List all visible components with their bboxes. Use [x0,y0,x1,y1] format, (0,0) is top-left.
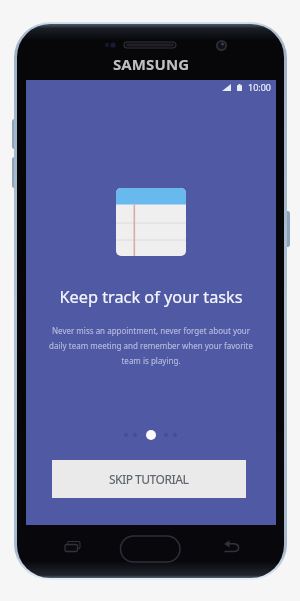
other: Volume down [12,157,18,188]
staticText: 10:00 [248,81,272,93]
other: Volume up [12,119,18,149]
staticText: Keep track of your tasks [59,286,243,308]
staticText: SKIP TUTORIAL [109,471,189,487]
staticText: Never miss an appointment, never forget … [45,325,257,366]
button[interactable]: SKIP TUTORIAL [52,460,246,498]
other: Power [284,211,290,247]
staticText: SAMSUNG [113,54,190,74]
